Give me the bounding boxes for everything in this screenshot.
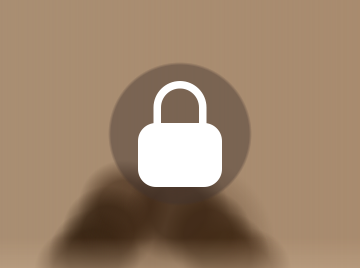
button[interactable]: Locked xyxy=(108,62,252,206)
